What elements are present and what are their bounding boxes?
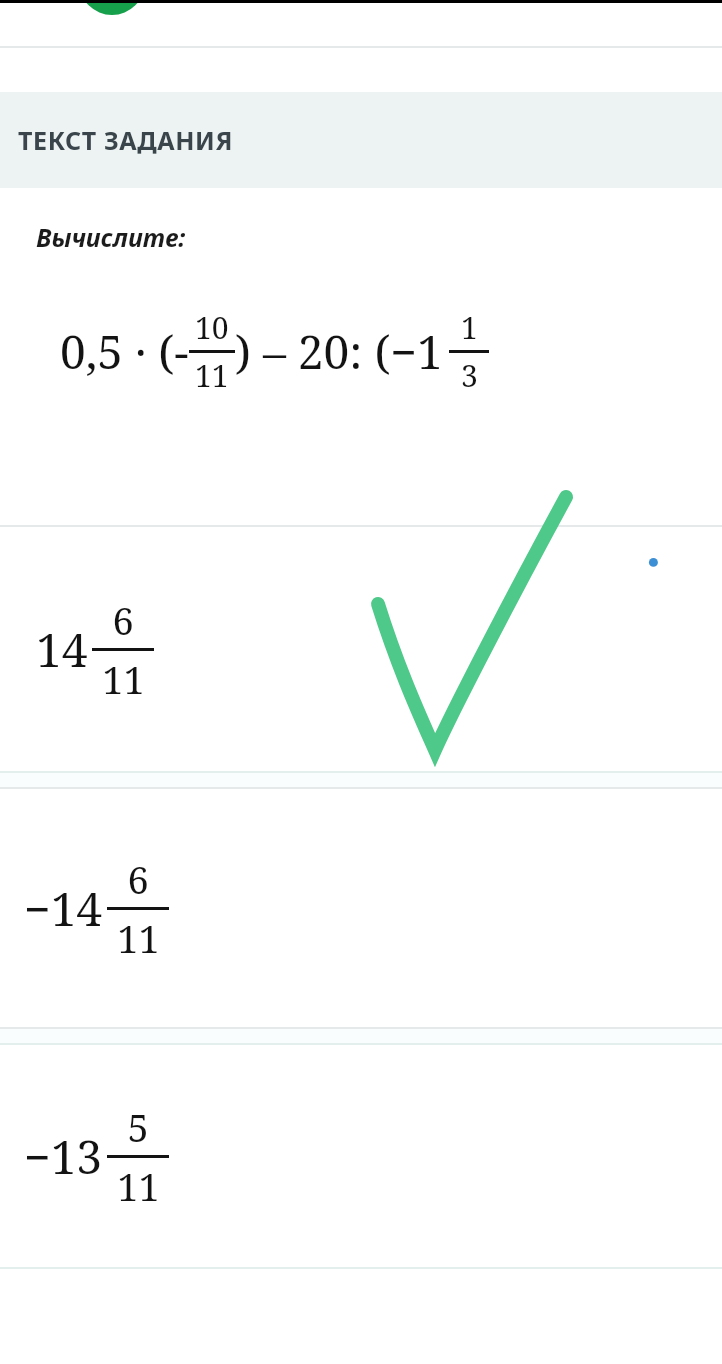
staticText: Вычислите: [36, 220, 186, 254]
staticText: −14 [24, 877, 103, 940]
button[interactable]: 14 [0, 527, 722, 771]
staticText: 11 [102, 653, 145, 705]
staticText: 6 [112, 594, 134, 646]
staticText: ) – 20: (−1 [235, 320, 443, 383]
staticText: 11 [195, 355, 229, 396]
staticText: 3 [461, 355, 478, 396]
staticText: 6 [127, 853, 149, 905]
button[interactable]: −13 [0, 1045, 722, 1267]
other: Correct answer mark [0, 0, 722, 1364]
button[interactable]: ТЕКСТ ЗАДАНИЯ [0, 92, 722, 188]
other: Selected [0, 527, 722, 771]
staticText: 14 [36, 618, 88, 681]
staticText: 5 [127, 1101, 149, 1153]
staticText: 11 [117, 1160, 160, 1212]
staticText: 1 [461, 307, 478, 348]
staticText: 10 [195, 307, 229, 348]
button[interactable]: −14 [0, 789, 722, 1027]
staticText: 11 [117, 912, 160, 964]
staticText: ТЕКСТ ЗАДАНИЯ [18, 123, 234, 157]
staticText: −13 [24, 1125, 103, 1188]
staticText: 0,5 · (- [60, 320, 189, 383]
